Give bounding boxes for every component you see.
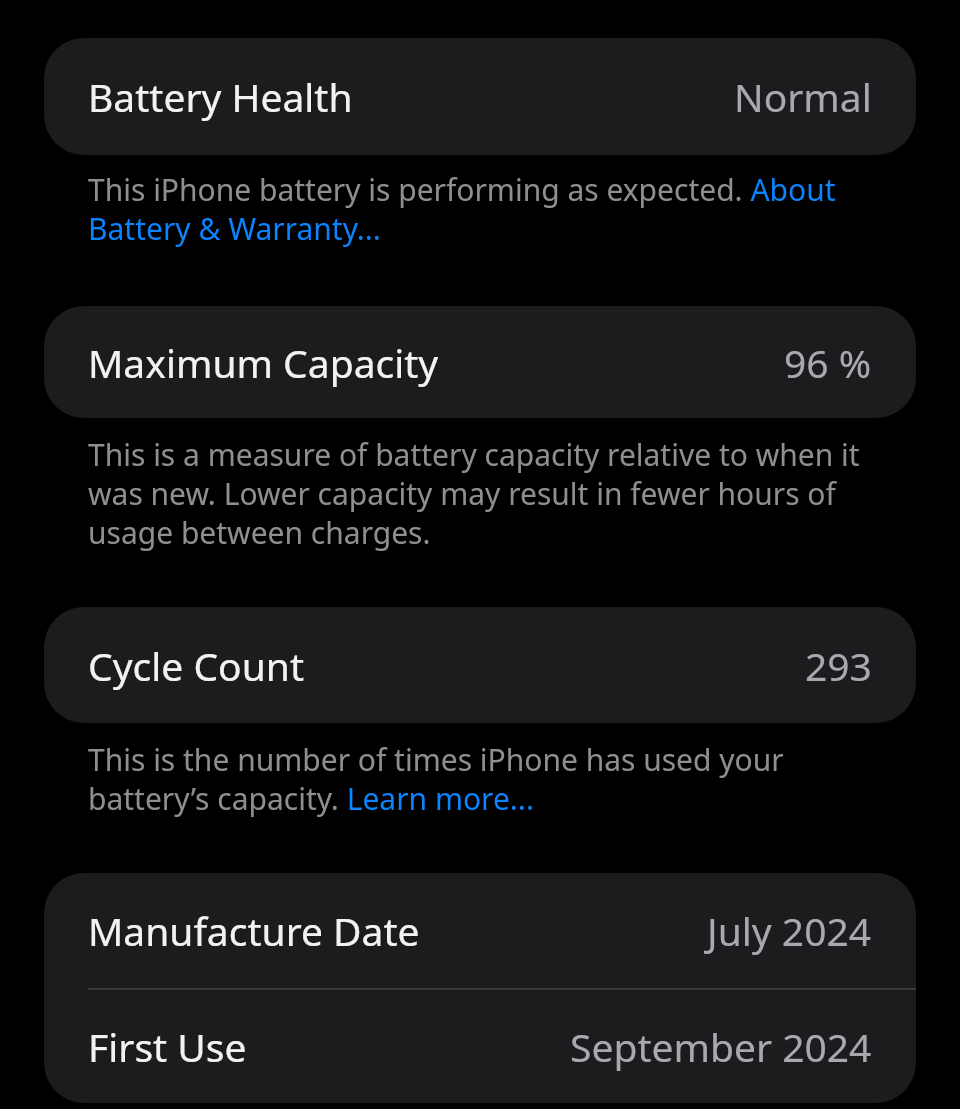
button[interactable]: Battery Health: [44, 38, 916, 155]
staticText: September 2024: [570, 1020, 872, 1073]
staticText: 293: [805, 639, 872, 692]
staticText: Manufacture Date: [88, 904, 420, 957]
staticText: Maximum Capacity: [88, 336, 439, 389]
staticText: First Use: [88, 1020, 247, 1073]
button[interactable]: First Use: [44, 990, 916, 1103]
button[interactable]: Cycle Count: [44, 607, 916, 723]
staticText: Battery Health: [88, 70, 353, 123]
staticText: This is the number of times iPhone has u…: [88, 739, 906, 818]
staticText: Normal: [734, 70, 872, 123]
staticText: This iPhone battery is performing as exp…: [88, 169, 906, 248]
staticText: July 2024: [707, 904, 872, 957]
staticText: Cycle Count: [88, 639, 304, 692]
button[interactable]: Maximum Capacity: [44, 306, 916, 418]
staticText: 96 %: [784, 336, 872, 389]
button[interactable]: Manufacture Date: [44, 873, 916, 988]
staticText: This is a measure of battery capacity re…: [88, 434, 900, 552]
